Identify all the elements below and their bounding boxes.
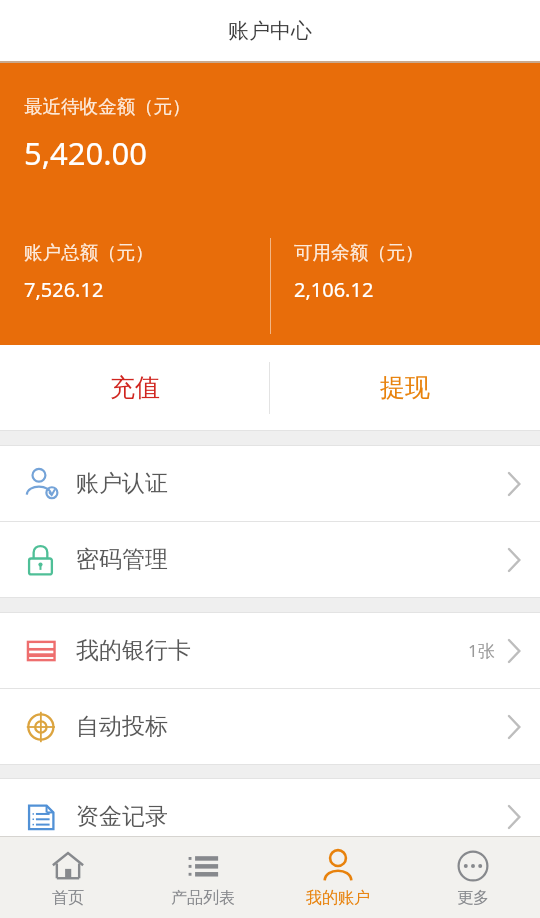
button[interactable]: 密码管理 [0,522,540,597]
button[interactable]: 我的银行卡 [0,613,540,688]
button[interactable]: 资金记录 [0,779,540,854]
other: 密码管理 [23,541,61,579]
staticText: 资金记录 [76,802,168,831]
staticText: 自动投标 [76,712,168,741]
button[interactable]: 更多 [405,837,540,918]
button[interactable]: 自动投标 [0,689,540,764]
other: 资金记录 [23,798,61,836]
staticText: 账户认证 [76,469,168,498]
other: 首页 [50,848,86,884]
other: 账户认证 [23,465,61,503]
staticText: 1张 [468,639,495,662]
staticText: 可用余额（元） [294,241,424,264]
staticText: 产品列表 [171,888,235,908]
staticText: 提现 [380,372,430,403]
button[interactable]: 提现 [270,345,540,430]
button[interactable]: 充值 [0,345,269,430]
staticText: 2,106.12 [294,276,374,303]
staticText: 我的账户 [306,888,370,908]
staticText: 更多 [457,888,489,908]
button[interactable]: 首页 [0,837,135,918]
staticText: 首页 [52,888,84,908]
button[interactable]: 产品列表 [135,837,270,918]
other: 我的银行卡 [23,632,61,670]
button[interactable]: 我的账户 [270,837,405,918]
other: 产品列表 [185,848,221,884]
button[interactable]: 账户认证 [0,446,540,521]
staticText: 充值 [110,372,160,403]
other: 我的账户 [320,848,356,884]
staticText: 密码管理 [76,545,168,574]
staticText: 账户中心 [228,18,312,44]
staticText: 最近待收金额（元） [24,95,191,118]
other: 更多 [455,848,491,884]
staticText: 5,420.00 [24,132,148,174]
other: 自动投标 [23,708,61,746]
staticText: 7,526.12 [24,276,104,303]
staticText: 我的银行卡 [76,636,191,665]
staticText: 账户总额（元） [24,241,154,264]
